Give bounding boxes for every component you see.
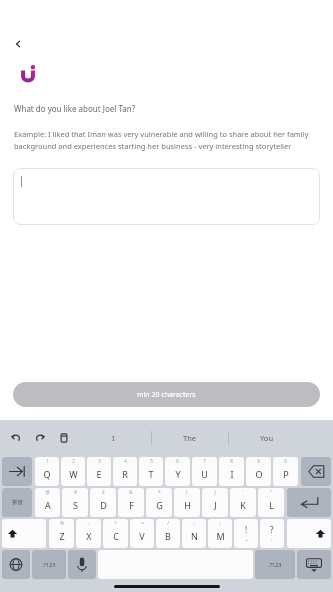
staticText: = — [141, 520, 144, 526]
button[interactable]: Change language — [2, 550, 30, 579]
staticText: 7 — [203, 458, 206, 464]
button[interactable]: You — [229, 420, 305, 456]
button[interactable]: Undo — [4, 426, 28, 450]
staticText: 9 — [257, 458, 260, 464]
button[interactable]: = — [130, 519, 154, 548]
button[interactable]: Voice input — [68, 550, 96, 579]
button[interactable]: @ — [35, 488, 60, 517]
staticText: ? — [270, 524, 274, 535]
staticText: 4 — [124, 458, 127, 464]
button[interactable]: 0 — [273, 457, 298, 486]
staticText: Example: I liked that Iman was very vuln… — [14, 129, 319, 152]
staticText: B — [165, 530, 171, 542]
button[interactable]: 1 — [35, 457, 59, 486]
staticText: .?123 — [42, 561, 56, 568]
staticText: H — [184, 499, 191, 511]
button[interactable] — [13, 168, 320, 225]
staticText: / — [167, 520, 169, 526]
button[interactable]: Back — [6, 32, 30, 56]
button[interactable]: Clipboard — [52, 426, 76, 450]
button[interactable]: 7 — [192, 457, 217, 486]
staticText: 0 — [284, 458, 287, 464]
staticText: ; — [219, 520, 221, 526]
button[interactable]: 8 — [219, 457, 244, 486]
staticText: Z — [59, 530, 65, 542]
staticText: ) — [214, 489, 216, 495]
staticText: * — [158, 489, 161, 495]
staticText: ( — [186, 489, 188, 495]
staticText: ' — [242, 489, 244, 495]
staticText: 2 — [72, 458, 75, 464]
button[interactable]: ' — [230, 488, 256, 517]
button[interactable]: Backspace — [301, 457, 331, 486]
staticText: The — [183, 433, 197, 443]
staticText: A — [45, 499, 51, 511]
staticText: £ — [102, 489, 105, 495]
staticText: + — [114, 520, 117, 526]
button[interactable]: £ — [90, 488, 116, 517]
button[interactable]: + — [103, 519, 128, 548]
button[interactable]: & — [118, 488, 144, 517]
staticText: & — [129, 489, 133, 495]
staticText: N — [191, 530, 198, 542]
staticText: P — [283, 468, 289, 480]
staticText: , — [246, 535, 248, 543]
button[interactable]: Redo — [28, 426, 52, 450]
button[interactable]: ! — [234, 519, 258, 548]
staticText: What do you like about Joel Tan? — [14, 103, 136, 114]
button[interactable]: - — [76, 519, 101, 548]
button[interactable]: ; — [208, 519, 232, 548]
staticText: D — [100, 499, 107, 511]
staticText: V — [139, 530, 145, 542]
staticText: : — [193, 520, 195, 526]
staticText: T — [148, 468, 154, 480]
staticText: K — [240, 499, 246, 511]
staticText: R — [122, 468, 128, 480]
button[interactable]: 2 — [61, 457, 85, 486]
staticText: min 20 characters — [137, 390, 196, 400]
staticText: I — [230, 468, 234, 480]
staticText: J — [214, 499, 217, 511]
staticText: I — [112, 433, 115, 443]
button[interactable]: I — [76, 420, 151, 456]
staticText: 1 — [46, 458, 49, 464]
button[interactable]: .?123 — [255, 550, 295, 579]
button[interactable]: Tab — [2, 457, 32, 486]
staticText: C — [113, 530, 119, 542]
button[interactable]: * — [146, 488, 172, 517]
staticText: U — [201, 468, 208, 480]
button[interactable]: # — [62, 488, 88, 517]
button[interactable]: " — [258, 488, 284, 517]
button[interactable]: 9 — [246, 457, 271, 486]
staticText: E — [96, 468, 102, 480]
button[interactable]: : — [182, 519, 206, 548]
button[interactable]: Shift — [2, 519, 46, 548]
button[interactable]: 5 — [139, 457, 163, 486]
staticText: . — [271, 535, 273, 543]
button[interactable]: 拼音 — [2, 488, 32, 517]
staticText: 3 — [98, 458, 101, 464]
staticText: " — [270, 489, 272, 495]
button[interactable]: 3 — [87, 457, 111, 486]
staticText: 拼音 — [12, 499, 23, 506]
staticText: 8 — [230, 458, 233, 464]
button[interactable]: ( — [174, 488, 200, 517]
button[interactable]: The — [152, 420, 228, 456]
staticText: @ — [45, 489, 50, 495]
staticText: % — [60, 520, 64, 526]
button[interactable]: 6 — [165, 457, 190, 486]
button[interactable]: 4 — [113, 457, 137, 486]
button[interactable]: / — [156, 519, 180, 548]
staticText: L — [269, 499, 274, 511]
button[interactable]: ? — [260, 519, 284, 548]
button[interactable]: .?123 — [32, 550, 66, 579]
button[interactable]: Enter — [287, 488, 331, 517]
staticText: X — [86, 530, 92, 542]
staticText: .?123 — [268, 561, 282, 568]
button[interactable]: Shift — [287, 519, 331, 548]
button[interactable]: Hide keyboard — [297, 550, 331, 579]
button[interactable]: % — [49, 519, 74, 548]
button[interactable]: min 20 characters — [13, 382, 320, 407]
button[interactable]: ) — [202, 488, 228, 517]
